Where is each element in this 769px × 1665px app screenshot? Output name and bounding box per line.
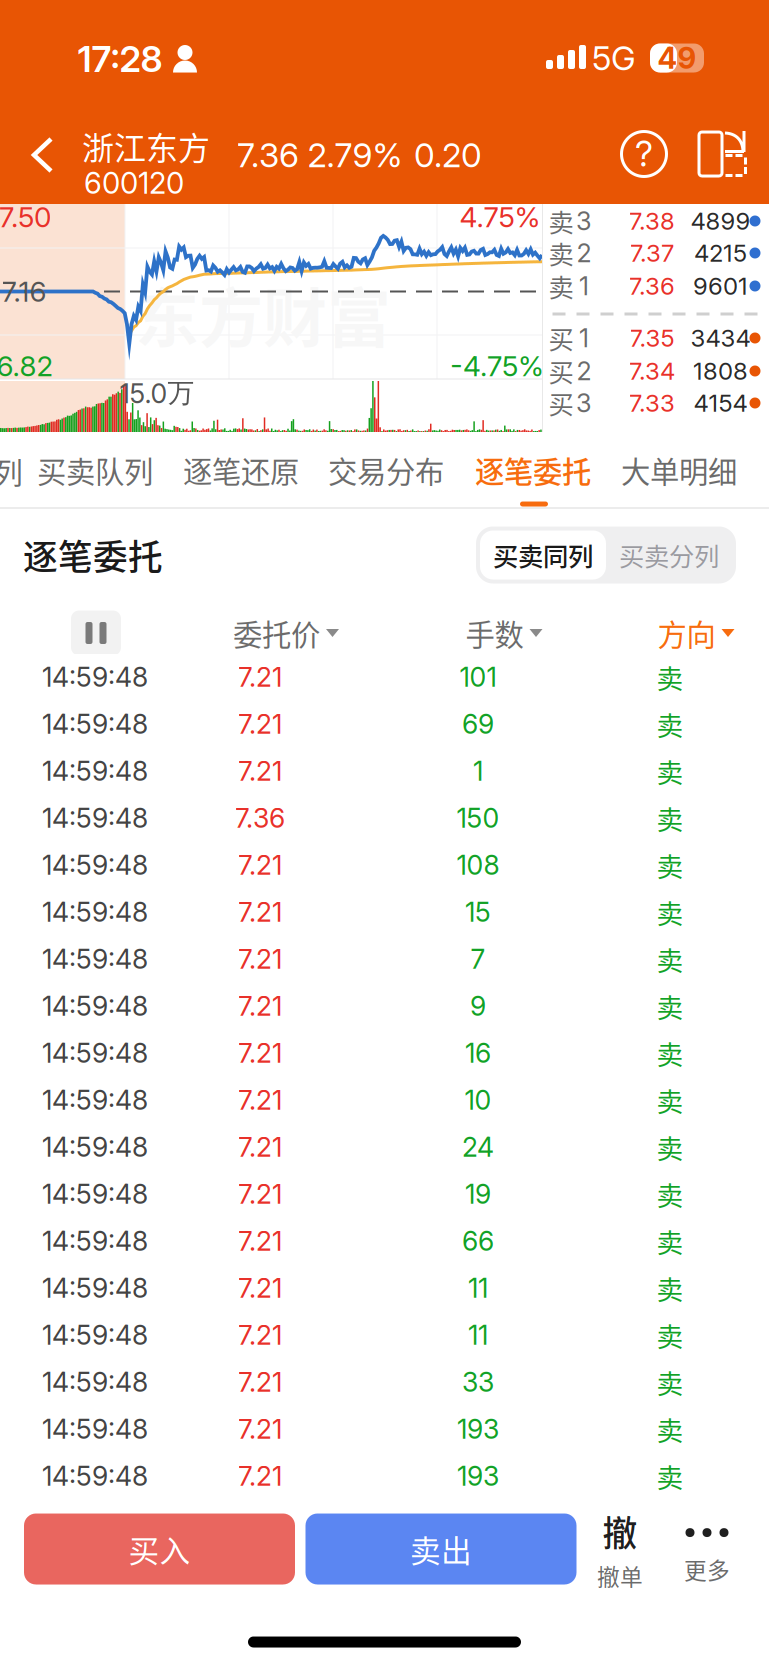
staticText: 1 xyxy=(473,755,483,787)
staticText: 卖 xyxy=(656,1269,683,1307)
staticText: 14:59:48 xyxy=(42,1131,148,1163)
staticText: 7.21 xyxy=(238,708,282,740)
button[interactable]: 方向 xyxy=(657,605,734,661)
staticText: 14:59:48 xyxy=(42,802,148,834)
staticText: 7.21 xyxy=(238,1460,282,1492)
staticText: 66 xyxy=(462,1225,494,1257)
button[interactable]: Pause xyxy=(71,610,121,655)
staticText: 买卖队列 xyxy=(37,449,153,491)
staticText: 7.21 xyxy=(238,755,282,787)
button[interactable]: 买卖分列 xyxy=(606,530,732,579)
staticText: 14:59:48 xyxy=(42,755,148,787)
staticText: 逐笔委托 xyxy=(475,449,591,491)
staticText: ? xyxy=(635,133,653,175)
button[interactable]: 委托价 xyxy=(233,605,339,661)
button[interactable]: Share xyxy=(698,131,748,177)
staticText: 14:59:48 xyxy=(42,1178,148,1210)
staticText: 14:59:48 xyxy=(42,990,148,1022)
staticText: 4899 xyxy=(690,206,750,235)
staticText: 1 xyxy=(579,271,589,301)
staticText: 1808 xyxy=(693,356,748,385)
staticText: 7.21 xyxy=(238,661,282,693)
staticText: 7.21 xyxy=(238,1366,282,1398)
staticText: 买 xyxy=(548,320,573,356)
staticText: 7 xyxy=(470,943,485,975)
button[interactable]: 手数 xyxy=(465,605,542,661)
staticText: 101 xyxy=(459,661,496,693)
button[interactable]: 逐笔委托 xyxy=(468,435,598,505)
button[interactable]: 卖出 xyxy=(305,1513,576,1584)
staticText: 3434 xyxy=(690,323,750,352)
staticText: 69 xyxy=(462,708,494,740)
staticText: 7.21 xyxy=(238,1131,282,1163)
staticText: 9601 xyxy=(693,271,748,300)
staticText: 14:59:48 xyxy=(42,1413,148,1445)
staticText: 买入 xyxy=(128,1527,190,1571)
button[interactable]: 撤 xyxy=(577,1506,663,1592)
staticText: 卖出 xyxy=(410,1527,472,1571)
staticText: 卖 xyxy=(656,799,683,837)
staticText: 15 xyxy=(465,896,491,928)
staticText: 卖 xyxy=(548,235,573,271)
staticText: 卖 xyxy=(656,658,683,696)
staticText: 7.36 xyxy=(235,802,285,834)
staticText: 14:59:48 xyxy=(42,896,148,928)
staticText: 买卖同列 xyxy=(493,537,593,573)
staticText: 14:59:48 xyxy=(42,1272,148,1304)
staticText: 14:59:48 xyxy=(42,1037,148,1069)
button[interactable]: 买卖队列 xyxy=(30,435,160,505)
staticText: 卖 xyxy=(656,1175,683,1213)
staticText: 600120 xyxy=(84,165,184,201)
staticText: 14:59:48 xyxy=(42,943,148,975)
staticText: 1 xyxy=(579,323,589,353)
button[interactable]: 买卖同列 xyxy=(480,530,606,579)
staticText: 买卖分列 xyxy=(619,537,719,573)
button[interactable]: 逐笔还原 xyxy=(176,435,306,505)
button[interactable]: 大单明细 xyxy=(614,435,744,505)
staticText: 2 xyxy=(576,356,591,386)
staticText: 7.21 xyxy=(238,990,282,1022)
staticText: 7.21 xyxy=(238,1272,282,1304)
staticText: 7.34 xyxy=(629,356,675,385)
staticText: 卖 xyxy=(656,752,683,790)
staticText: 列 xyxy=(0,450,22,492)
button[interactable]: Back xyxy=(15,118,73,192)
staticText: 卖 xyxy=(656,1128,683,1166)
staticText: 7.21 xyxy=(238,1084,282,1116)
staticText: 卖 xyxy=(656,1034,683,1072)
staticText: 17:28 xyxy=(77,37,162,81)
staticText: 7.21 xyxy=(238,849,282,881)
staticText: 0.20 xyxy=(414,135,482,175)
button[interactable]: Help xyxy=(618,128,670,180)
button[interactable]: 交易分布 xyxy=(321,435,451,505)
staticText: 14:59:48 xyxy=(42,708,148,740)
staticText: 7.36 xyxy=(237,135,299,175)
staticText: 7.50 xyxy=(0,200,51,234)
staticText: 卖 xyxy=(656,1363,683,1401)
staticText: 7.21 xyxy=(238,1225,282,1257)
staticText: 33 xyxy=(462,1366,494,1398)
staticText: 卖 xyxy=(656,940,683,978)
button[interactable]: 更多 xyxy=(664,1506,750,1592)
staticText: 卖 xyxy=(656,846,683,884)
staticText: 14:59:48 xyxy=(42,1460,148,1492)
staticText: 卖 xyxy=(656,1410,683,1448)
staticText: 7.35 xyxy=(629,323,674,352)
staticText: 14:59:48 xyxy=(42,1084,148,1116)
staticText: 3 xyxy=(576,206,592,236)
staticText: 14:59:48 xyxy=(42,849,148,881)
staticText: 7.21 xyxy=(238,1413,282,1445)
staticText: 7.21 xyxy=(238,896,282,928)
staticText: 手数 xyxy=(465,612,523,654)
staticText: 委托价 xyxy=(233,612,320,654)
button[interactable]: 买入 xyxy=(24,1513,295,1584)
staticText: 撤单 xyxy=(597,1559,643,1592)
staticText: 逐笔还原 xyxy=(183,449,299,491)
staticText: 9 xyxy=(470,990,486,1022)
staticText: -4.75% xyxy=(450,349,544,383)
staticText: 7.33 xyxy=(629,388,675,417)
staticText: 7.16 xyxy=(1,275,46,308)
staticText: 7.38 xyxy=(629,206,675,235)
staticText: 49 xyxy=(657,40,696,76)
staticText: 2 xyxy=(576,238,591,268)
